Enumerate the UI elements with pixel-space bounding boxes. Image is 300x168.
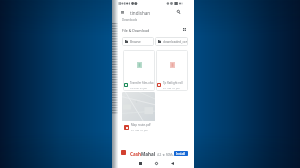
staticText: Downloads [122,18,138,22]
staticText: File & Download [122,28,150,33]
button[interactable]: Back [168,159,177,168]
staticText: 18.4 kB 27 Jan [130,86,148,89]
button[interactable]: Browse [122,37,154,46]
button[interactable]: Tp flatlight roll [156,50,188,91]
staticText: Transfer files.xlsx [130,81,154,85]
staticText: Map route.pdf [131,123,151,127]
staticText: Cash [130,151,141,157]
staticText: 2.1 MB 21 Jan [131,128,148,131]
button[interactable]: Map route.pdf [122,92,155,133]
button[interactable]: Transfer files.xlsx [123,50,155,91]
staticText: Install [176,152,186,156]
staticText: Browse [130,40,141,44]
staticText: Tp flatlight roll [163,81,183,85]
button[interactable]: Switch to grid view [181,26,187,32]
staticText: downloaded_con [163,40,188,44]
button[interactable]: Open navigation drawer [119,8,126,16]
button[interactable]: Home [152,159,161,168]
button[interactable]: Recents [136,159,145,168]
button[interactable]: Search [174,8,182,16]
staticText: Mahal [141,151,156,157]
button[interactable]: Install [174,151,188,156]
staticText: tindishan [130,10,151,16]
staticText: 2.1 MB 21 Jan [163,86,180,89]
staticText: 4.2 ★ 50M+ [157,153,174,157]
button[interactable]: downloaded_con [155,37,188,46]
